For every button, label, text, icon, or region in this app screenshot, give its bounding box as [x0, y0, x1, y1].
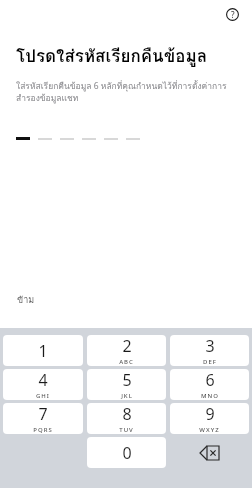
button[interactable]: ข้าม [16, 291, 36, 309]
button[interactable]: 8 [87, 403, 166, 434]
staticText: ? [231, 9, 235, 20]
staticText: 8 [122, 403, 132, 425]
staticText: PQRS [33, 426, 53, 434]
staticText: ใส่รหัสเรียกคืนข้อมูล 6 หลักที่คุณกำหนดไ… [16, 79, 236, 105]
button[interactable]: 7 [3, 403, 83, 434]
button[interactable]: 2 [87, 335, 166, 366]
staticText: 3 [205, 335, 215, 357]
button[interactable]: Help [222, 4, 243, 25]
staticText: 1 [38, 340, 48, 362]
staticText: MNO [201, 392, 219, 400]
staticText: 0 [122, 442, 132, 464]
button[interactable]: 4 [3, 369, 83, 400]
staticText: 5 [122, 369, 132, 391]
staticText: TUV [119, 426, 134, 434]
staticText: WXYZ [199, 426, 220, 434]
button[interactable]: 5 [87, 369, 166, 400]
staticText: 6 [205, 369, 215, 391]
staticText: ข้าม [17, 293, 35, 307]
staticText: 7 [38, 403, 48, 425]
button[interactable]: 1 [3, 335, 83, 366]
staticText: 2 [122, 335, 132, 357]
staticText: 4 [38, 369, 48, 391]
button[interactable]: 9 [170, 403, 249, 434]
button[interactable]: 6 [170, 369, 249, 400]
staticText: JKL [121, 392, 133, 400]
staticText: 9 [205, 403, 215, 425]
button[interactable]: 3 [170, 335, 249, 366]
staticText: ABC [119, 358, 134, 366]
staticText: DEF [203, 358, 217, 366]
button[interactable]: Delete [170, 437, 249, 468]
staticText: GHI [36, 392, 50, 400]
staticText: โปรดใส่รหัสเรียกคืนข้อมูล [16, 42, 208, 69]
button[interactable]: 0 [87, 437, 166, 468]
